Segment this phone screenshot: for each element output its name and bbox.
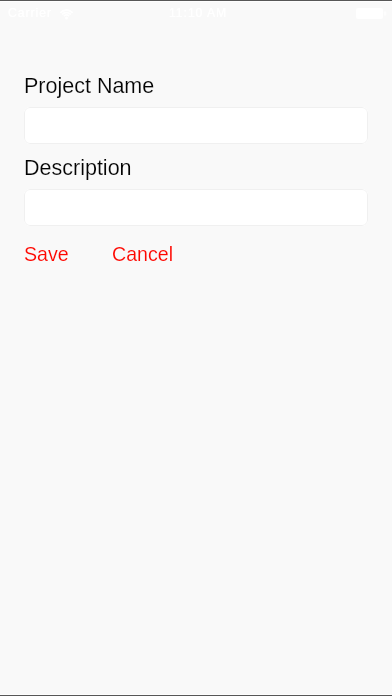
button[interactable]: Cancel [104,237,181,271]
button[interactable]: Description input [24,189,368,226]
button[interactable]: Save [16,237,77,271]
staticText: Project Name [24,74,155,98]
staticText: Description [24,156,132,180]
staticText: Cancel [112,243,173,265]
button[interactable]: Project name input [24,107,368,144]
staticText: Save [24,243,69,265]
